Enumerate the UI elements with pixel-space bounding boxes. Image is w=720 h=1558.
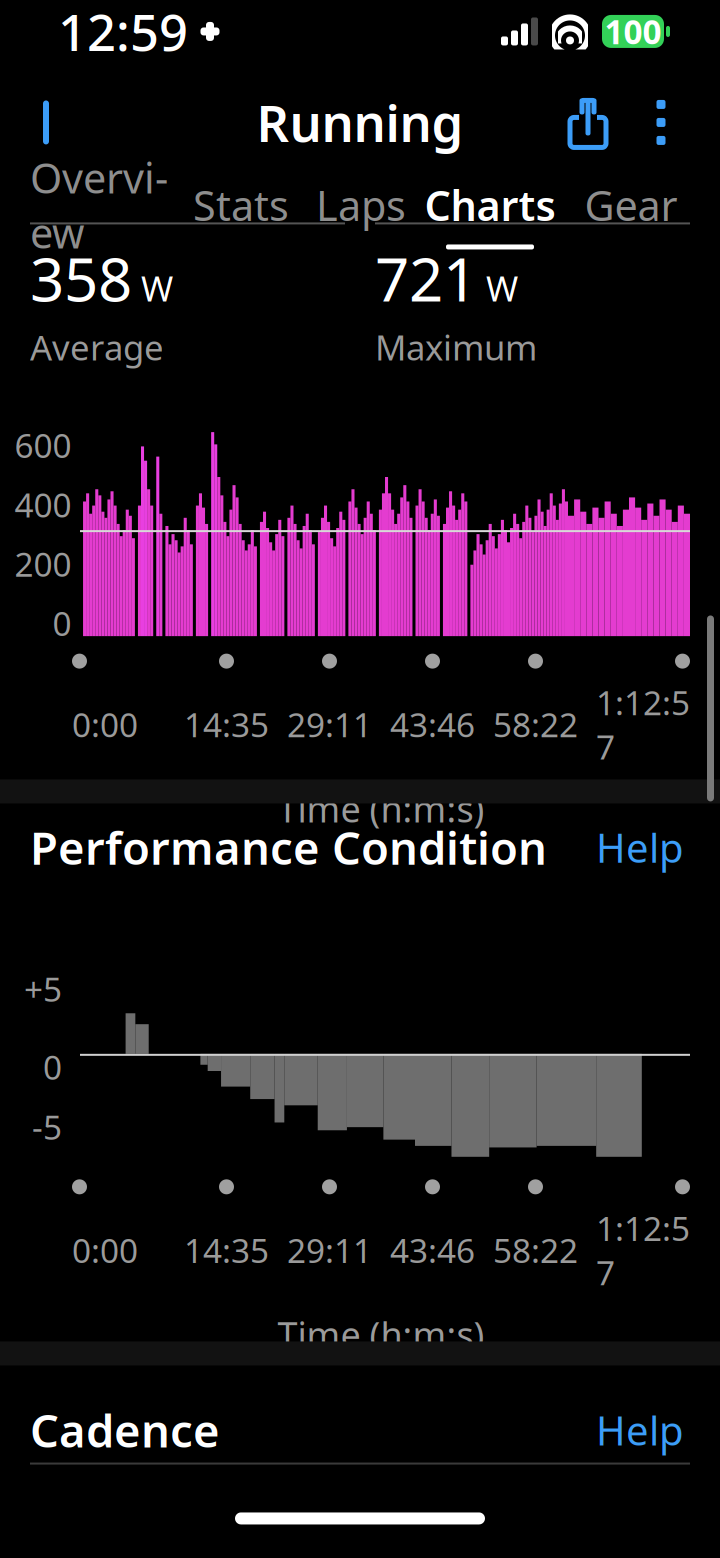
staticText: W <box>486 265 518 311</box>
button[interactable]: Overview <box>19 165 179 259</box>
button[interactable]: Help <box>590 1397 690 1462</box>
staticText: 14:35 <box>184 702 269 747</box>
staticText: 0:00 <box>72 702 138 747</box>
staticText: Average <box>30 324 164 370</box>
button[interactable]: Share <box>550 84 626 160</box>
button[interactable]: Back <box>14 84 90 160</box>
staticText: 12:59 <box>58 0 188 65</box>
button[interactable]: Help <box>590 815 690 880</box>
staticText: 43:46 <box>390 1228 475 1272</box>
staticText: 721 <box>375 238 477 318</box>
staticText: 58:22 <box>493 702 578 747</box>
staticText: 600 <box>14 423 71 467</box>
staticText: 0 <box>43 1045 62 1089</box>
button[interactable]: Gear <box>561 165 701 259</box>
staticText: Help <box>596 1403 684 1456</box>
staticText: Stats <box>193 177 289 232</box>
staticText: 0:00 <box>72 1228 138 1272</box>
staticText: 1:12:57 <box>596 680 690 769</box>
staticText: 14:35 <box>184 1228 269 1272</box>
staticText: Performance Condition <box>30 817 547 877</box>
button[interactable]: Charts <box>419 165 561 259</box>
staticText: 0 <box>52 601 71 645</box>
staticText: Laps <box>316 177 406 232</box>
staticText: 1:12:57 <box>596 1206 690 1294</box>
staticText: 358 <box>30 238 132 318</box>
staticText: +5 <box>24 967 62 1011</box>
staticText: 43:46 <box>390 702 475 747</box>
staticText: Help <box>596 821 684 874</box>
staticText: W <box>141 265 173 311</box>
staticText: 58:22 <box>493 1228 578 1272</box>
staticText: Gear <box>584 177 677 232</box>
staticText: 29:11 <box>287 1228 372 1272</box>
button[interactable]: Laps <box>303 165 419 259</box>
staticText: Cadence <box>30 1400 220 1460</box>
staticText: Charts <box>424 177 555 232</box>
button[interactable]: More options <box>626 84 696 160</box>
staticText: Time (h:m:s) <box>277 785 484 832</box>
staticText: 29:11 <box>287 702 372 747</box>
staticText: Time (h:m:s) <box>277 1310 484 1358</box>
staticText: Running <box>256 89 463 156</box>
button[interactable]: Stats <box>179 165 303 259</box>
staticText: 100 <box>604 9 661 54</box>
staticText: -5 <box>32 1105 62 1149</box>
staticText: 200 <box>14 542 71 586</box>
staticText: 400 <box>14 482 71 527</box>
staticText: Overview <box>30 150 168 260</box>
staticText: Maximum <box>375 324 537 370</box>
